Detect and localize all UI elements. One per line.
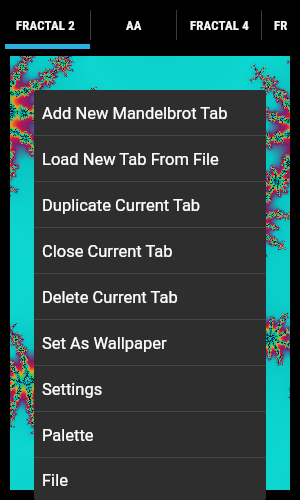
staticText: Close Current Tab: [42, 242, 173, 261]
staticText: Palette: [42, 426, 94, 445]
staticText: FRACTAL 4: [190, 18, 250, 33]
button[interactable]: FR: [262, 0, 300, 50]
button[interactable]: Set As Wallpaper: [34, 320, 266, 365]
staticText: Delete Current Tab: [42, 288, 178, 307]
button[interactable]: FRACTAL 4: [177, 0, 262, 50]
staticText: Add New Mandelbrot Tab: [42, 104, 228, 123]
staticText: AA: [126, 18, 142, 33]
staticText: Set As Wallpaper: [42, 334, 167, 353]
button[interactable]: Palette: [34, 412, 266, 457]
button[interactable]: Close Current Tab: [34, 228, 266, 273]
button[interactable]: Delete Current Tab: [34, 274, 266, 319]
button[interactable]: Add New Mandelbrot Tab: [34, 90, 266, 135]
staticText: Settings: [42, 380, 103, 399]
staticText: FRACTAL 2: [16, 18, 76, 33]
staticText: FR: [274, 18, 288, 33]
button[interactable]: Settings: [34, 366, 266, 411]
button[interactable]: Load New Tab From File: [34, 136, 266, 181]
staticText: File: [42, 471, 68, 490]
button[interactable]: AA: [91, 0, 177, 50]
staticText: Load New Tab From File: [42, 150, 219, 169]
button[interactable]: FRACTAL 2: [0, 0, 91, 50]
button[interactable]: Duplicate Current Tab: [34, 182, 266, 227]
staticText: Duplicate Current Tab: [42, 196, 201, 215]
button[interactable]: File: [34, 458, 266, 500]
